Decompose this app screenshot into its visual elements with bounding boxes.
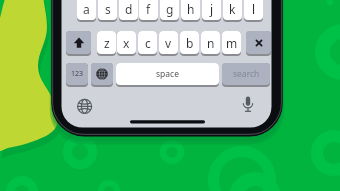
staticText: c [145,35,151,51]
button[interactable]: b [180,31,199,56]
button[interactable] [238,95,258,115]
button[interactable]: space [116,63,219,87]
button[interactable]: d [119,0,138,22]
button[interactable]: h [181,0,200,22]
staticText: v [165,35,172,51]
staticText: 123 [71,69,84,79]
button[interactable]: a [77,0,96,22]
button[interactable]: z [97,31,116,56]
staticText: search [233,68,260,80]
button[interactable]: x [117,31,136,56]
button[interactable] [91,63,113,87]
button[interactable]: l [244,0,263,22]
button[interactable] [75,97,95,117]
staticText: l [252,1,256,17]
staticText: a [83,1,90,17]
staticText: z [104,35,110,51]
button[interactable]: search [222,63,270,87]
button[interactable]: v [159,31,178,56]
button[interactable]: k [223,0,242,22]
button[interactable] [246,31,271,56]
button[interactable]: 123 [66,63,88,87]
staticText: x [123,35,130,51]
button[interactable]: j [202,0,221,22]
staticText: k [229,1,236,17]
staticText: m [226,35,238,51]
staticText: n [207,35,215,51]
button[interactable]: s [98,0,117,22]
button[interactable]: f [139,0,158,22]
staticText: b [186,35,194,51]
button[interactable]: n [201,31,220,56]
staticText: d [125,1,133,17]
staticText: f [146,1,151,17]
button[interactable]: c [138,31,157,56]
button[interactable] [66,31,91,56]
staticText: space [156,68,179,80]
staticText: s [105,1,111,17]
button[interactable]: g [160,0,179,22]
staticText: h [187,1,195,17]
staticText: g [166,1,174,17]
button[interactable]: m [222,31,241,56]
staticText: j [210,1,214,17]
